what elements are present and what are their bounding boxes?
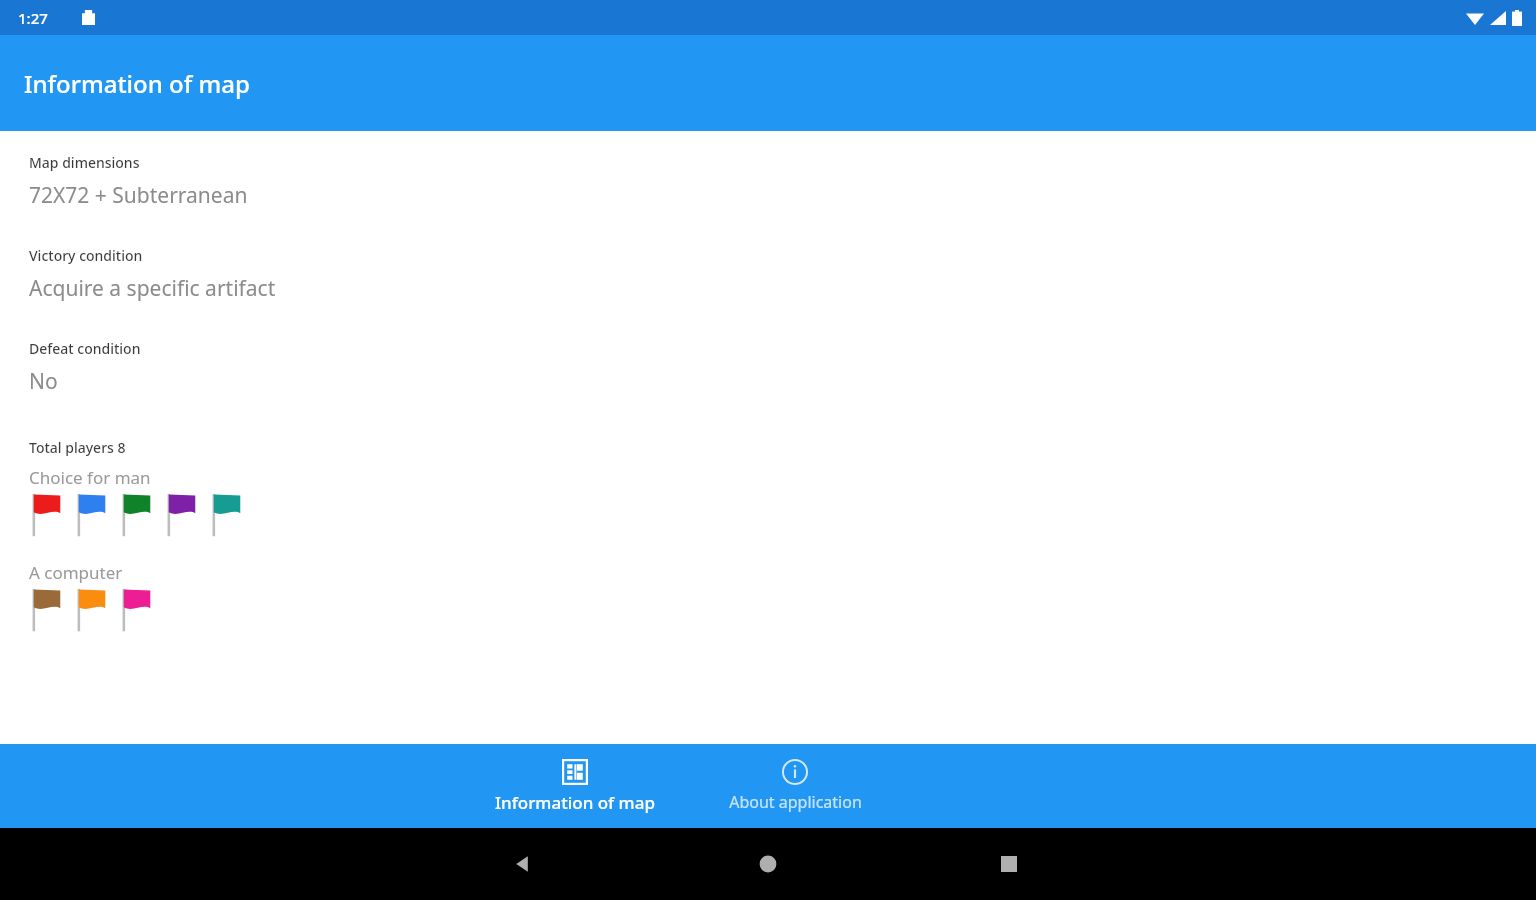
other: Recent apps — [999, 854, 1019, 874]
staticText: 72X72 + Subterranean — [29, 181, 248, 210]
other: Home — [758, 854, 778, 874]
staticText: Defeat condition — [29, 339, 141, 358]
staticText: Information of map — [24, 67, 250, 100]
staticText: A computer — [29, 561, 123, 584]
staticText: Information of map — [495, 791, 655, 814]
staticText: Total players 8 — [29, 438, 126, 457]
button[interactable]: About application — [695, 744, 895, 828]
staticText: Acquire a specific artifact — [29, 274, 276, 303]
staticText: About application — [729, 791, 862, 813]
staticText: No — [29, 367, 58, 396]
other: Back — [511, 852, 535, 876]
staticText: Victory condition — [29, 246, 143, 265]
button[interactable]: Information of map — [475, 744, 675, 828]
staticText: Map dimensions — [29, 153, 140, 172]
staticText: 1:27 — [18, 8, 48, 28]
staticText: Choice for man — [29, 466, 151, 489]
